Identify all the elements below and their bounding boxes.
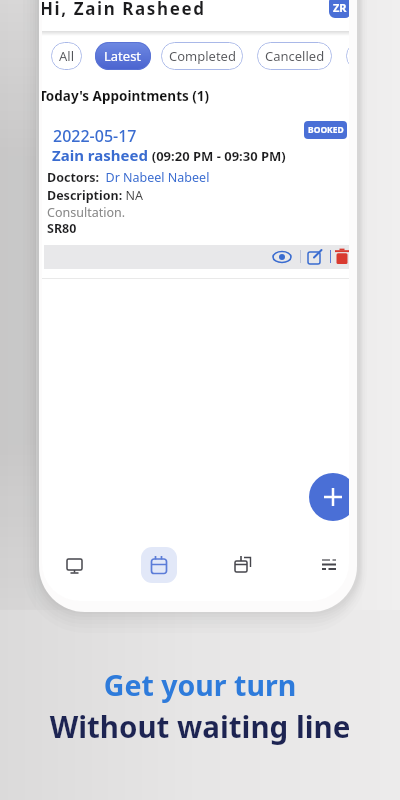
button[interactable] bbox=[318, 554, 340, 576]
button[interactable]: ZR bbox=[329, 0, 349, 18]
button[interactable] bbox=[309, 473, 349, 521]
button[interactable] bbox=[272, 248, 292, 266]
button[interactable]: Completed bbox=[161, 42, 243, 70]
button[interactable]: 2022-05-17 bbox=[42, 116, 349, 270]
staticText: Get your turn bbox=[0, 666, 400, 705]
staticText: SR80 bbox=[47, 220, 77, 237]
staticText: Cancelled bbox=[265, 47, 325, 65]
button[interactable]: Cancelled bbox=[257, 42, 332, 70]
button[interactable] bbox=[346, 42, 349, 70]
staticText: Hi, Zain Rasheed bbox=[42, 0, 206, 20]
staticText: ZR bbox=[333, 0, 347, 15]
button[interactable] bbox=[335, 248, 349, 266]
staticText: Latest bbox=[104, 47, 142, 65]
staticText: Today's Appointments (1) bbox=[42, 87, 210, 105]
button[interactable]: Latest bbox=[95, 42, 151, 70]
staticText: Consultation. bbox=[47, 204, 126, 221]
staticText: Doctors: Dr Nabeel Nabeel bbox=[47, 169, 210, 186]
button[interactable]: All bbox=[51, 42, 82, 70]
button[interactable] bbox=[232, 553, 254, 575]
staticText: Description: NA bbox=[47, 187, 143, 204]
staticText: Completed bbox=[169, 47, 236, 65]
staticText: All bbox=[59, 47, 75, 65]
button[interactable] bbox=[141, 547, 177, 583]
staticText: BOOKED bbox=[308, 124, 344, 136]
staticText: Without waiting line bbox=[0, 706, 400, 746]
button[interactable] bbox=[63, 554, 85, 576]
button[interactable] bbox=[307, 248, 325, 266]
staticText: Zain rasheed (09:20 PM - 09:30 PM) bbox=[52, 145, 286, 165]
staticText: 2022-05-17 bbox=[53, 125, 137, 147]
